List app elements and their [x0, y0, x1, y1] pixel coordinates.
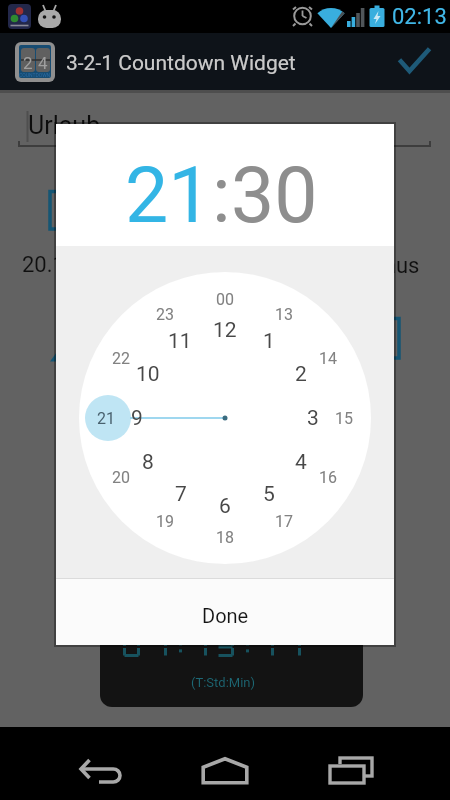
staticText: 20.1: [22, 252, 65, 278]
staticText: Done: [202, 604, 249, 627]
staticText: 12: [213, 318, 237, 343]
staticText: 19: [156, 512, 174, 531]
staticText: 18: [216, 528, 234, 547]
staticText: aus: [384, 253, 420, 279]
staticText: 6: [219, 494, 231, 519]
button[interactable]: [60, 737, 140, 790]
staticText: 9: [131, 406, 143, 431]
staticText: 20: [112, 468, 130, 487]
staticText: 21: [97, 409, 115, 428]
button[interactable]: [311, 737, 391, 790]
staticText: 22: [112, 349, 130, 368]
staticText: 00: [216, 290, 234, 309]
staticText: 4: [295, 450, 307, 475]
button[interactable]: Done: [56, 579, 394, 645]
staticText: 4: [38, 53, 48, 73]
staticText: 15: [335, 409, 353, 428]
staticText: 11: [168, 329, 192, 354]
staticText: 10: [136, 362, 160, 387]
staticText: (T:Std:Min): [191, 675, 256, 690]
staticText: 30: [231, 151, 318, 241]
staticText: 16: [319, 468, 337, 487]
staticText: 8: [142, 450, 154, 475]
staticText: 7: [175, 482, 187, 507]
staticText: Urlaub: [28, 111, 101, 140]
staticText: 21: [125, 151, 212, 241]
staticText: 13: [275, 305, 293, 324]
staticText: 14: [319, 349, 337, 368]
staticText: 3-2-1 Countdown Widget: [66, 51, 296, 76]
button[interactable]: [185, 737, 265, 790]
staticText: 3: [307, 406, 319, 431]
staticText: COUNTDOWN: [19, 72, 51, 78]
staticText: 17: [275, 512, 293, 531]
staticText: 2: [23, 53, 33, 73]
staticText: :: [212, 151, 231, 241]
staticText: 02:13: [392, 4, 447, 30]
button[interactable]: [386, 35, 446, 90]
staticText: 1: [263, 329, 275, 354]
staticText: 5: [263, 482, 275, 507]
staticText: 2: [295, 362, 307, 387]
staticText: 23: [156, 305, 174, 324]
